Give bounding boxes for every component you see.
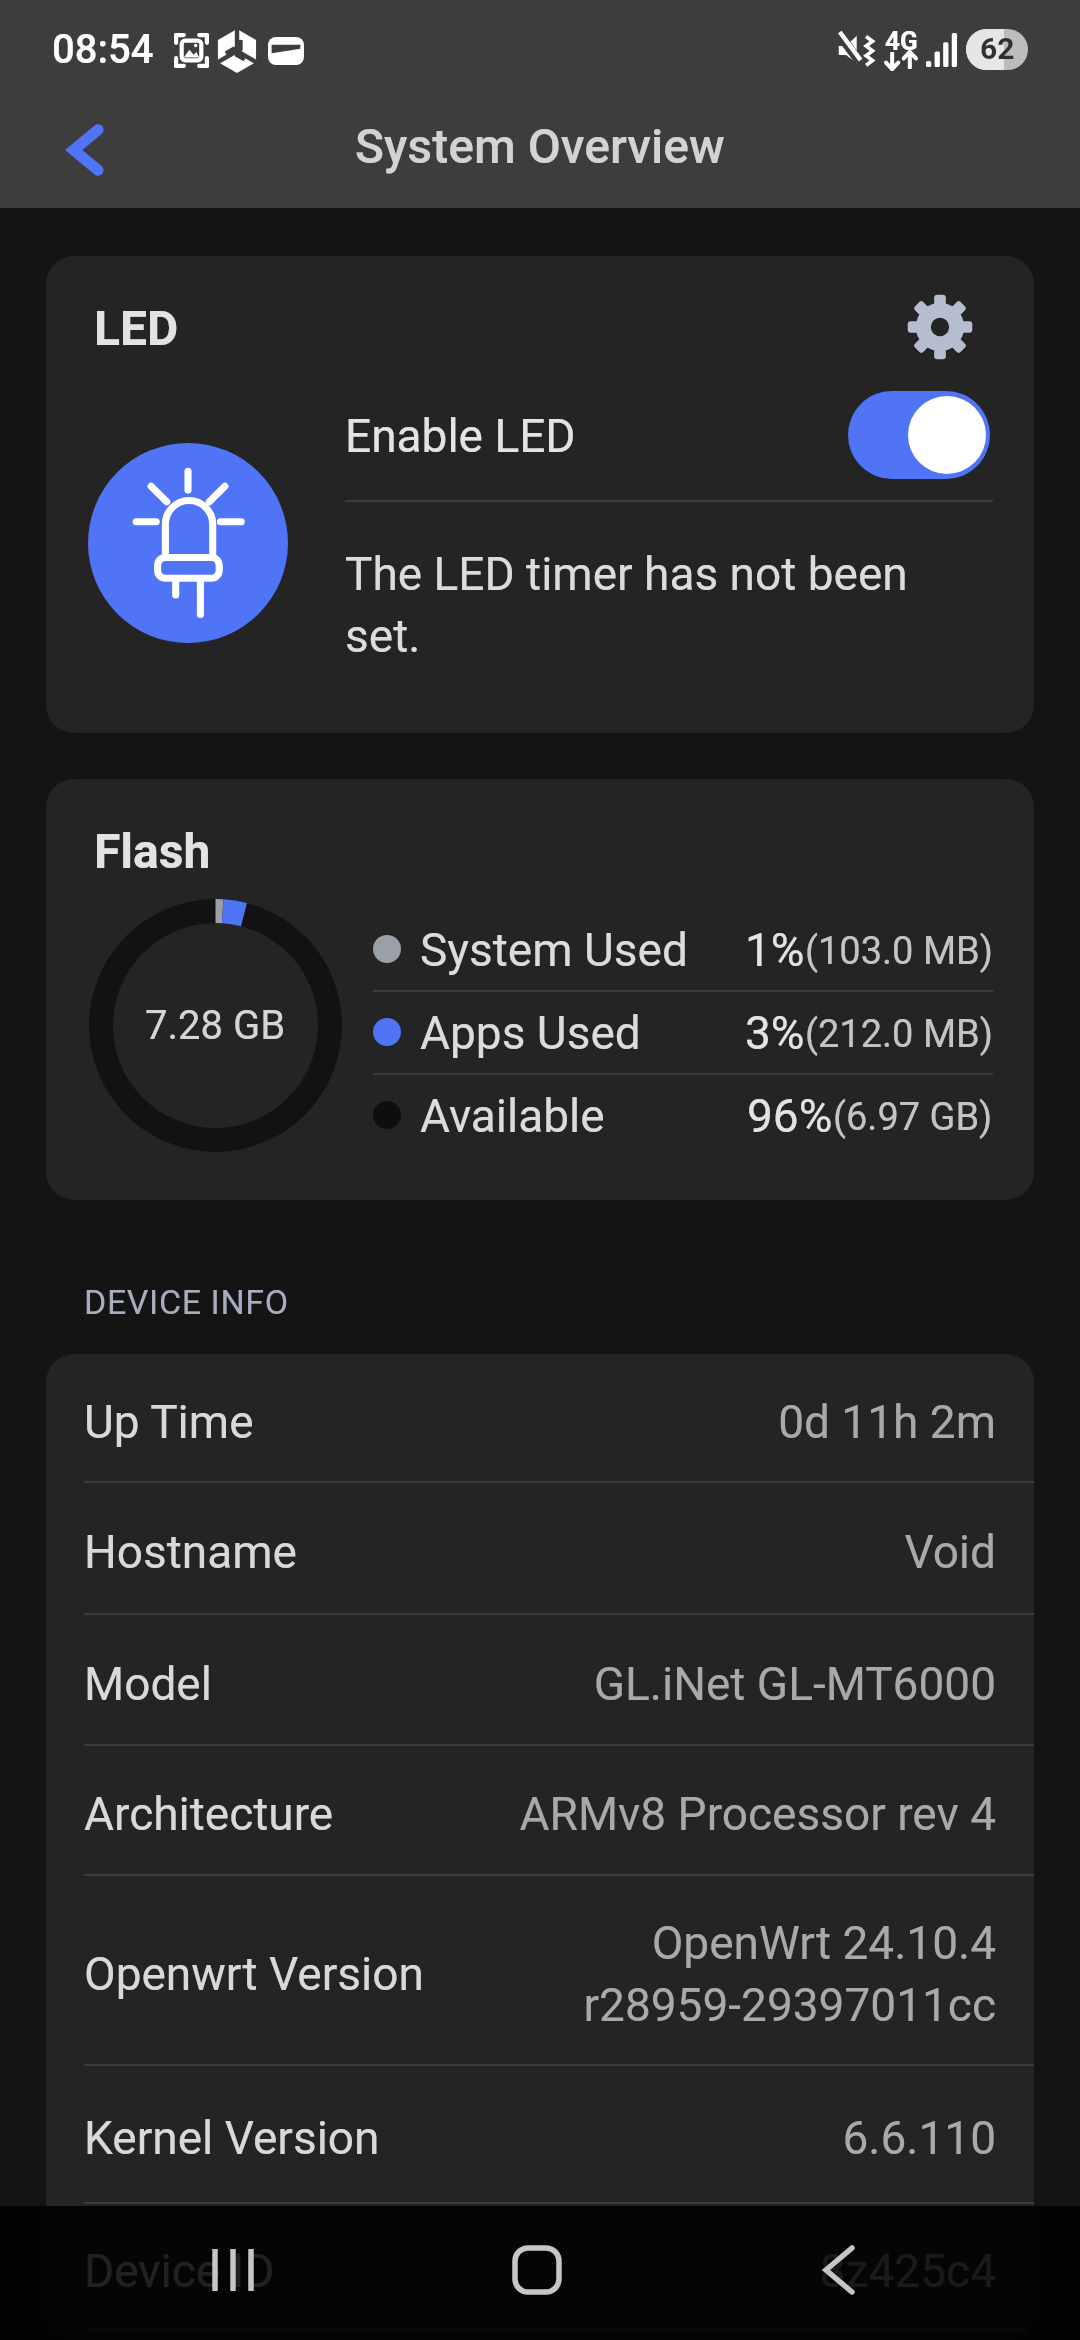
staticText: Hostname <box>84 1525 297 1579</box>
staticText: Architecture <box>84 1787 334 1841</box>
button[interactable]: Hostname <box>46 1483 1034 1613</box>
staticText: 7.28 GB <box>145 1002 286 1049</box>
staticText: DEVICE INFO <box>84 1282 289 1322</box>
staticText: Enable LED <box>345 409 576 463</box>
staticText: LED <box>94 300 179 356</box>
staticText: Device ID <box>84 2244 275 2298</box>
staticText: 3% <box>745 1006 805 1060</box>
staticText: 0d 11h 2m <box>778 1395 996 1449</box>
staticText: 08:54 <box>52 26 154 73</box>
button[interactable]: Model <box>46 1615 1034 1744</box>
staticText: 6.6.110 <box>842 2111 996 2165</box>
staticText: 96% <box>747 1089 833 1143</box>
staticText: Apps Used <box>420 1006 641 1060</box>
staticText: Openwrt Version <box>84 1947 424 2001</box>
staticText: Available <box>420 1089 605 1143</box>
staticText: ARMv8 Processor rev 4 <box>519 1787 996 1841</box>
staticText: Void <box>904 1525 996 1579</box>
staticText: (6.97 GB) <box>833 1095 993 1140</box>
button[interactable]: Enable LED toggle <box>848 391 990 479</box>
button[interactable]: Device ID <box>46 2204 1034 2329</box>
button[interactable]: Recents <box>188 2226 278 2314</box>
button[interactable]: Home <box>492 2226 582 2314</box>
staticText: 1% <box>745 923 805 977</box>
staticText: System Overview <box>355 118 725 174</box>
button[interactable]: Openwrt Version <box>46 1876 1034 2064</box>
button[interactable]: Kernel Version <box>46 2066 1034 2202</box>
staticText: 62 <box>980 31 1015 66</box>
staticText: Model <box>84 1657 212 1711</box>
staticText: System Used <box>420 923 688 977</box>
staticText: 8z425c4 <box>819 2244 996 2298</box>
button[interactable]: Architecture <box>46 1746 1034 1874</box>
staticText: (103.0 MB) <box>805 929 993 974</box>
button[interactable]: LED settings <box>900 287 980 367</box>
staticText: (212.0 MB) <box>805 1012 993 1057</box>
button[interactable]: Back <box>46 108 130 192</box>
staticText: Flash <box>94 823 211 879</box>
button[interactable]: Back <box>794 2226 884 2314</box>
staticText: 4G <box>885 26 918 56</box>
button[interactable]: Up Time <box>46 1354 1034 1481</box>
staticText: OpenWrt 24.10.4 r28959-29397011cc <box>583 1916 996 2032</box>
staticText: GL.iNet GL-MT6000 <box>593 1657 996 1711</box>
staticText: Kernel Version <box>84 2111 380 2165</box>
staticText: The LED timer has not been set. <box>345 547 993 663</box>
staticText: Up Time <box>84 1395 254 1449</box>
